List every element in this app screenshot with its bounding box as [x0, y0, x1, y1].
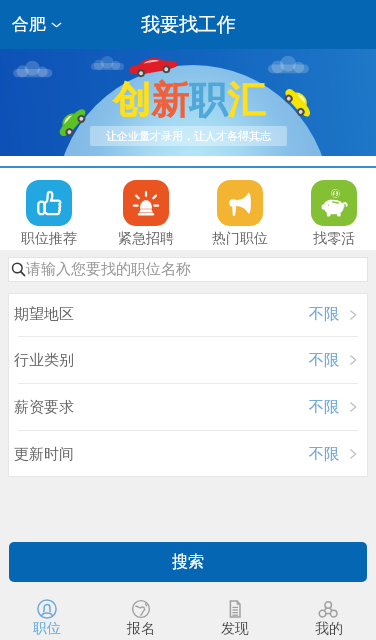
staticText: 汇: [227, 76, 265, 124]
button[interactable]: 找零活: [287, 168, 376, 248]
button[interactable]: 请输入您要找的职位名称: [8, 257, 368, 282]
staticText: 行业类别: [14, 351, 74, 370]
staticText: 不限: [309, 398, 339, 417]
staticText: 合肥: [12, 14, 46, 35]
staticText: 期望地区: [14, 305, 74, 324]
staticText: 职位: [33, 620, 61, 638]
button[interactable]: Sign up: [94, 592, 188, 638]
staticText: 薪资要求: [14, 398, 74, 417]
staticText: 创: [113, 76, 151, 124]
button[interactable]: 热门职位: [193, 168, 287, 248]
staticText: 不限: [309, 445, 339, 464]
staticText: 让企业量才录用，让人才各得其志: [106, 129, 271, 143]
button[interactable]: 紧急招聘: [99, 168, 193, 248]
staticText: 新: [151, 76, 189, 124]
staticText: 不限: [309, 351, 339, 370]
button[interactable]: 期望地区: [8, 293, 368, 337]
staticText: 发现: [221, 620, 249, 638]
staticText: 搜索: [172, 552, 204, 572]
staticText: 请输入您要找的职位名称: [26, 260, 191, 279]
staticText: 更新时间: [14, 445, 74, 464]
staticText: 紧急招聘: [118, 230, 174, 248]
staticText: 找零活: [313, 230, 355, 248]
staticText: 我要找工作: [141, 13, 236, 37]
button[interactable]: Jobs: [0, 592, 94, 638]
staticText: 职位推荐: [21, 230, 77, 248]
staticText: 报名: [127, 620, 155, 638]
button[interactable]: 行业类别: [8, 337, 368, 384]
button[interactable]: Discover: [188, 592, 282, 638]
staticText: 我的: [315, 620, 343, 638]
button[interactable]: 搜索: [9, 542, 367, 582]
button[interactable]: Mine: [282, 592, 376, 638]
staticText: 职: [189, 76, 227, 124]
button[interactable]: 薪资要求: [8, 384, 368, 431]
button[interactable]: 职位推荐: [2, 168, 96, 248]
staticText: 热门职位: [212, 230, 268, 248]
staticText: 不限: [309, 305, 339, 324]
button[interactable]: 更新时间: [8, 431, 368, 477]
button[interactable]: 合肥: [0, 8, 74, 41]
